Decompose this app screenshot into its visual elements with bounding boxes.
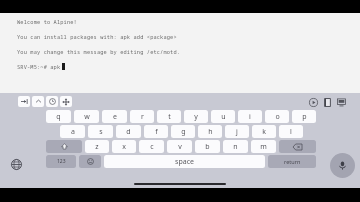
button[interactable]: s bbox=[88, 125, 113, 138]
button[interactable]: v bbox=[167, 140, 192, 153]
staticText: 123 bbox=[57, 158, 66, 165]
staticText: return bbox=[284, 158, 301, 165]
button[interactable]: 123 bbox=[46, 155, 76, 168]
staticText: b bbox=[205, 142, 210, 152]
button[interactable]: w bbox=[74, 110, 99, 123]
button[interactable]: return bbox=[268, 155, 316, 168]
button[interactable]: m bbox=[251, 140, 276, 153]
staticText: a bbox=[71, 127, 75, 137]
staticText: l bbox=[290, 127, 292, 137]
button[interactable]: q bbox=[46, 110, 71, 123]
staticText: y bbox=[194, 112, 198, 122]
button[interactable]: c bbox=[139, 140, 164, 153]
staticText: Welcome to Alpine! bbox=[17, 18, 77, 25]
staticText: j bbox=[236, 127, 238, 137]
staticText: x bbox=[122, 142, 126, 152]
button[interactable]: b bbox=[195, 140, 220, 153]
button[interactable]: i bbox=[238, 110, 262, 123]
button[interactable]: Documents bbox=[322, 97, 332, 107]
button[interactable]: Escape bbox=[46, 96, 58, 107]
staticText: SRV-M5:~# apk bbox=[17, 63, 61, 70]
button[interactable]: n bbox=[223, 140, 248, 153]
button[interactable]: e bbox=[102, 110, 127, 123]
staticText: w bbox=[84, 112, 90, 122]
button[interactable]: g bbox=[171, 125, 195, 138]
staticText: k bbox=[262, 127, 266, 137]
button[interactable]: Arrow keys bbox=[60, 96, 72, 107]
staticText: p bbox=[302, 112, 307, 122]
button[interactable]: p bbox=[292, 110, 316, 123]
staticText: d bbox=[126, 127, 131, 137]
staticText: s bbox=[99, 127, 103, 137]
staticText: You may change this message by editing /… bbox=[17, 48, 181, 55]
button[interactable]: Run bbox=[308, 97, 318, 107]
staticText: You can install packages with: apk add <… bbox=[17, 33, 177, 40]
button[interactable]: x bbox=[112, 140, 136, 153]
button[interactable]: l bbox=[279, 125, 303, 138]
button[interactable]: u bbox=[211, 110, 235, 123]
button[interactable]: y bbox=[184, 110, 208, 123]
staticText: space bbox=[175, 157, 194, 167]
staticText: m bbox=[260, 142, 267, 152]
button[interactable]: r bbox=[130, 110, 154, 123]
button[interactable]: k bbox=[252, 125, 276, 138]
button[interactable]: Shift bbox=[46, 140, 82, 153]
button[interactable]: o bbox=[265, 110, 289, 123]
button[interactable]: Display bbox=[336, 97, 346, 107]
button[interactable]: Emoji bbox=[79, 155, 101, 168]
button[interactable]: d bbox=[116, 125, 141, 138]
staticText: q bbox=[56, 112, 61, 122]
button[interactable]: Control bbox=[32, 96, 44, 107]
staticText: o bbox=[275, 112, 280, 122]
button[interactable]: f bbox=[144, 125, 168, 138]
staticText: i bbox=[249, 112, 251, 122]
button[interactable]: space bbox=[104, 155, 265, 168]
staticText: z bbox=[95, 142, 99, 152]
staticText: r bbox=[141, 112, 144, 122]
button[interactable]: j bbox=[225, 125, 249, 138]
button[interactable]: a bbox=[60, 125, 85, 138]
staticText: c bbox=[150, 142, 154, 152]
staticText: v bbox=[178, 142, 182, 152]
staticText: g bbox=[181, 127, 186, 137]
button[interactable]: t bbox=[157, 110, 181, 123]
staticText: h bbox=[208, 127, 213, 137]
button[interactable]: Dictate bbox=[330, 153, 355, 178]
button[interactable]: Tab bbox=[18, 96, 30, 107]
staticText: e bbox=[113, 112, 117, 122]
staticText: u bbox=[221, 112, 226, 122]
staticText: t bbox=[168, 112, 171, 122]
button[interactable]: h bbox=[198, 125, 222, 138]
staticText: n bbox=[233, 142, 238, 152]
button[interactable]: Delete bbox=[279, 140, 316, 153]
button[interactable]: z bbox=[85, 140, 109, 153]
button[interactable]: Next keyboard bbox=[9, 157, 24, 172]
staticText: f bbox=[155, 127, 158, 137]
